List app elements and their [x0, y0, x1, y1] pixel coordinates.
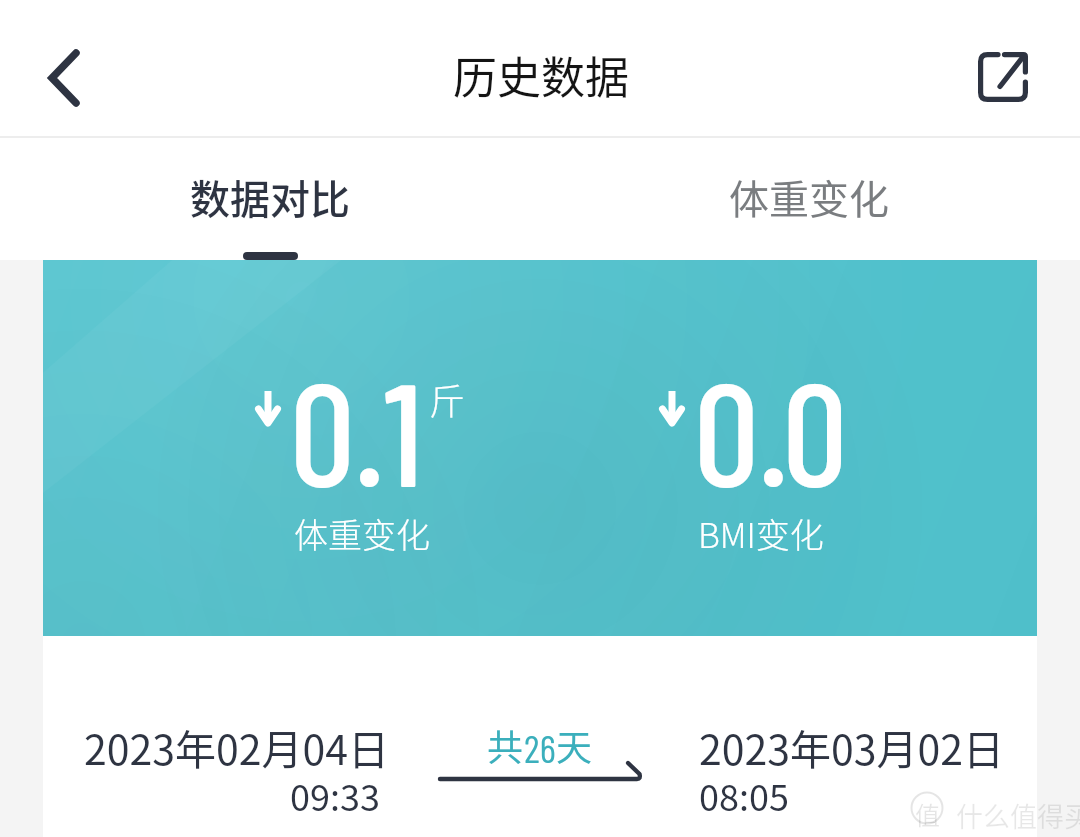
- staticText: 体重变化: [294, 509, 430, 558]
- button[interactable]: Back: [20, 34, 108, 122]
- button[interactable]: 体重变化: [694, 138, 924, 260]
- staticText: 共: [487, 719, 524, 771]
- staticText: 09:33: [84, 769, 380, 821]
- staticText: 历史数据: [453, 43, 629, 107]
- staticText: 0.1: [290, 342, 423, 516]
- staticText: 天: [556, 719, 593, 771]
- button[interactable]: Share: [959, 33, 1047, 121]
- staticText: 08:05: [699, 769, 789, 821]
- staticText: 2023年03月02日: [699, 717, 1005, 776]
- staticText: 什么值得买: [956, 796, 1080, 835]
- staticText: 0.0: [694, 342, 848, 516]
- staticText: 2023年02月04日: [84, 717, 390, 776]
- staticText: 体重变化: [729, 168, 889, 226]
- button[interactable]: 0.1: [43, 260, 1037, 636]
- staticText: BMI变化: [698, 509, 824, 558]
- staticText: 值: [915, 796, 941, 832]
- staticText: 斤: [429, 373, 466, 425]
- button[interactable]: 数据对比: [155, 138, 385, 260]
- staticText: 26: [524, 724, 556, 771]
- staticText: 数据对比: [190, 168, 350, 226]
